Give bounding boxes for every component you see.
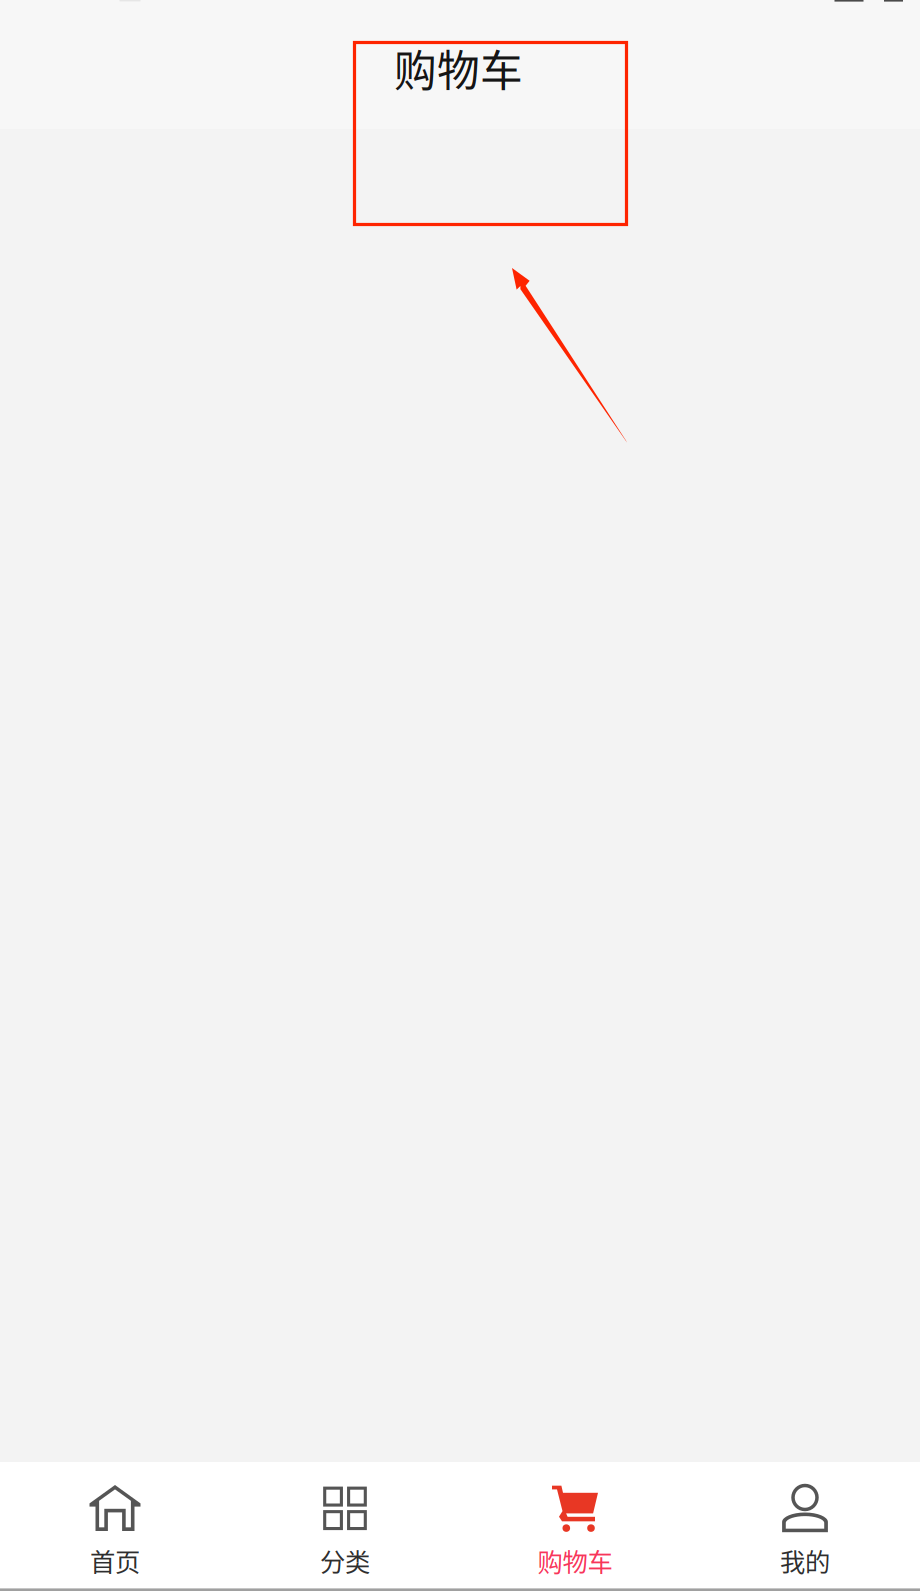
button[interactable]: 我的 (690, 1462, 920, 1591)
staticText: 我的 (780, 1542, 830, 1579)
staticText: 首页 (90, 1542, 140, 1579)
staticText: 分类 (320, 1542, 370, 1579)
button[interactable]: 分类 (230, 1462, 460, 1591)
button[interactable]: 购物车 (460, 1462, 690, 1591)
staticText: 购物车 (394, 37, 523, 99)
button[interactable]: 首页 (0, 1462, 230, 1591)
staticText: 购物车 (537, 1542, 612, 1579)
